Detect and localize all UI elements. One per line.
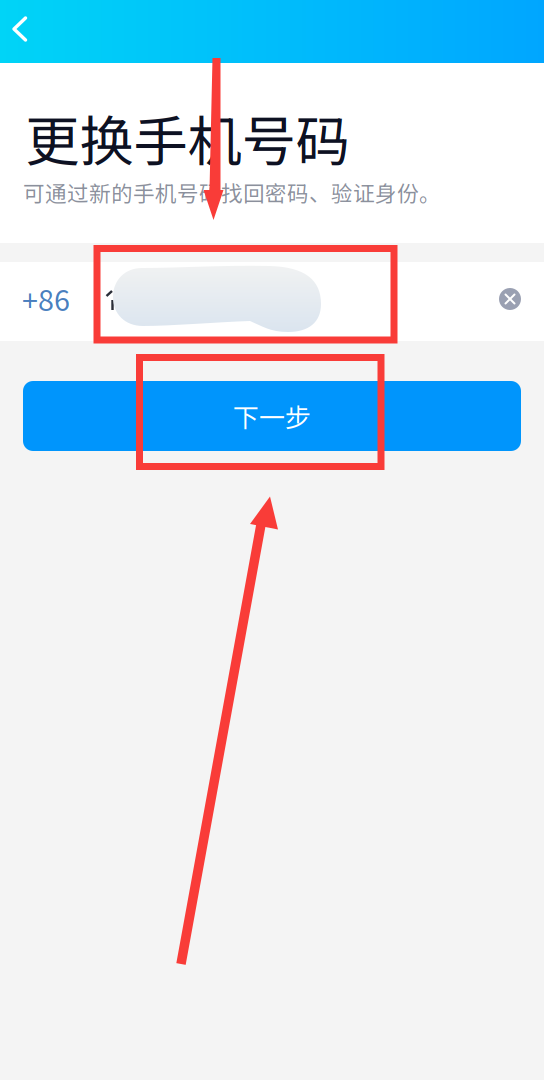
button[interactable]: Back	[0, 1, 47, 57]
button[interactable]: Clear	[488, 277, 532, 321]
staticText: 可通过新的手机号码找回密码、验证身份。	[23, 176, 441, 208]
button[interactable]: +86	[11, 259, 81, 338]
staticText: 下一步	[233, 397, 311, 435]
staticText: 更换手机号码	[25, 98, 349, 177]
staticText: +86	[22, 278, 70, 319]
button[interactable]: 下一步	[23, 381, 521, 451]
